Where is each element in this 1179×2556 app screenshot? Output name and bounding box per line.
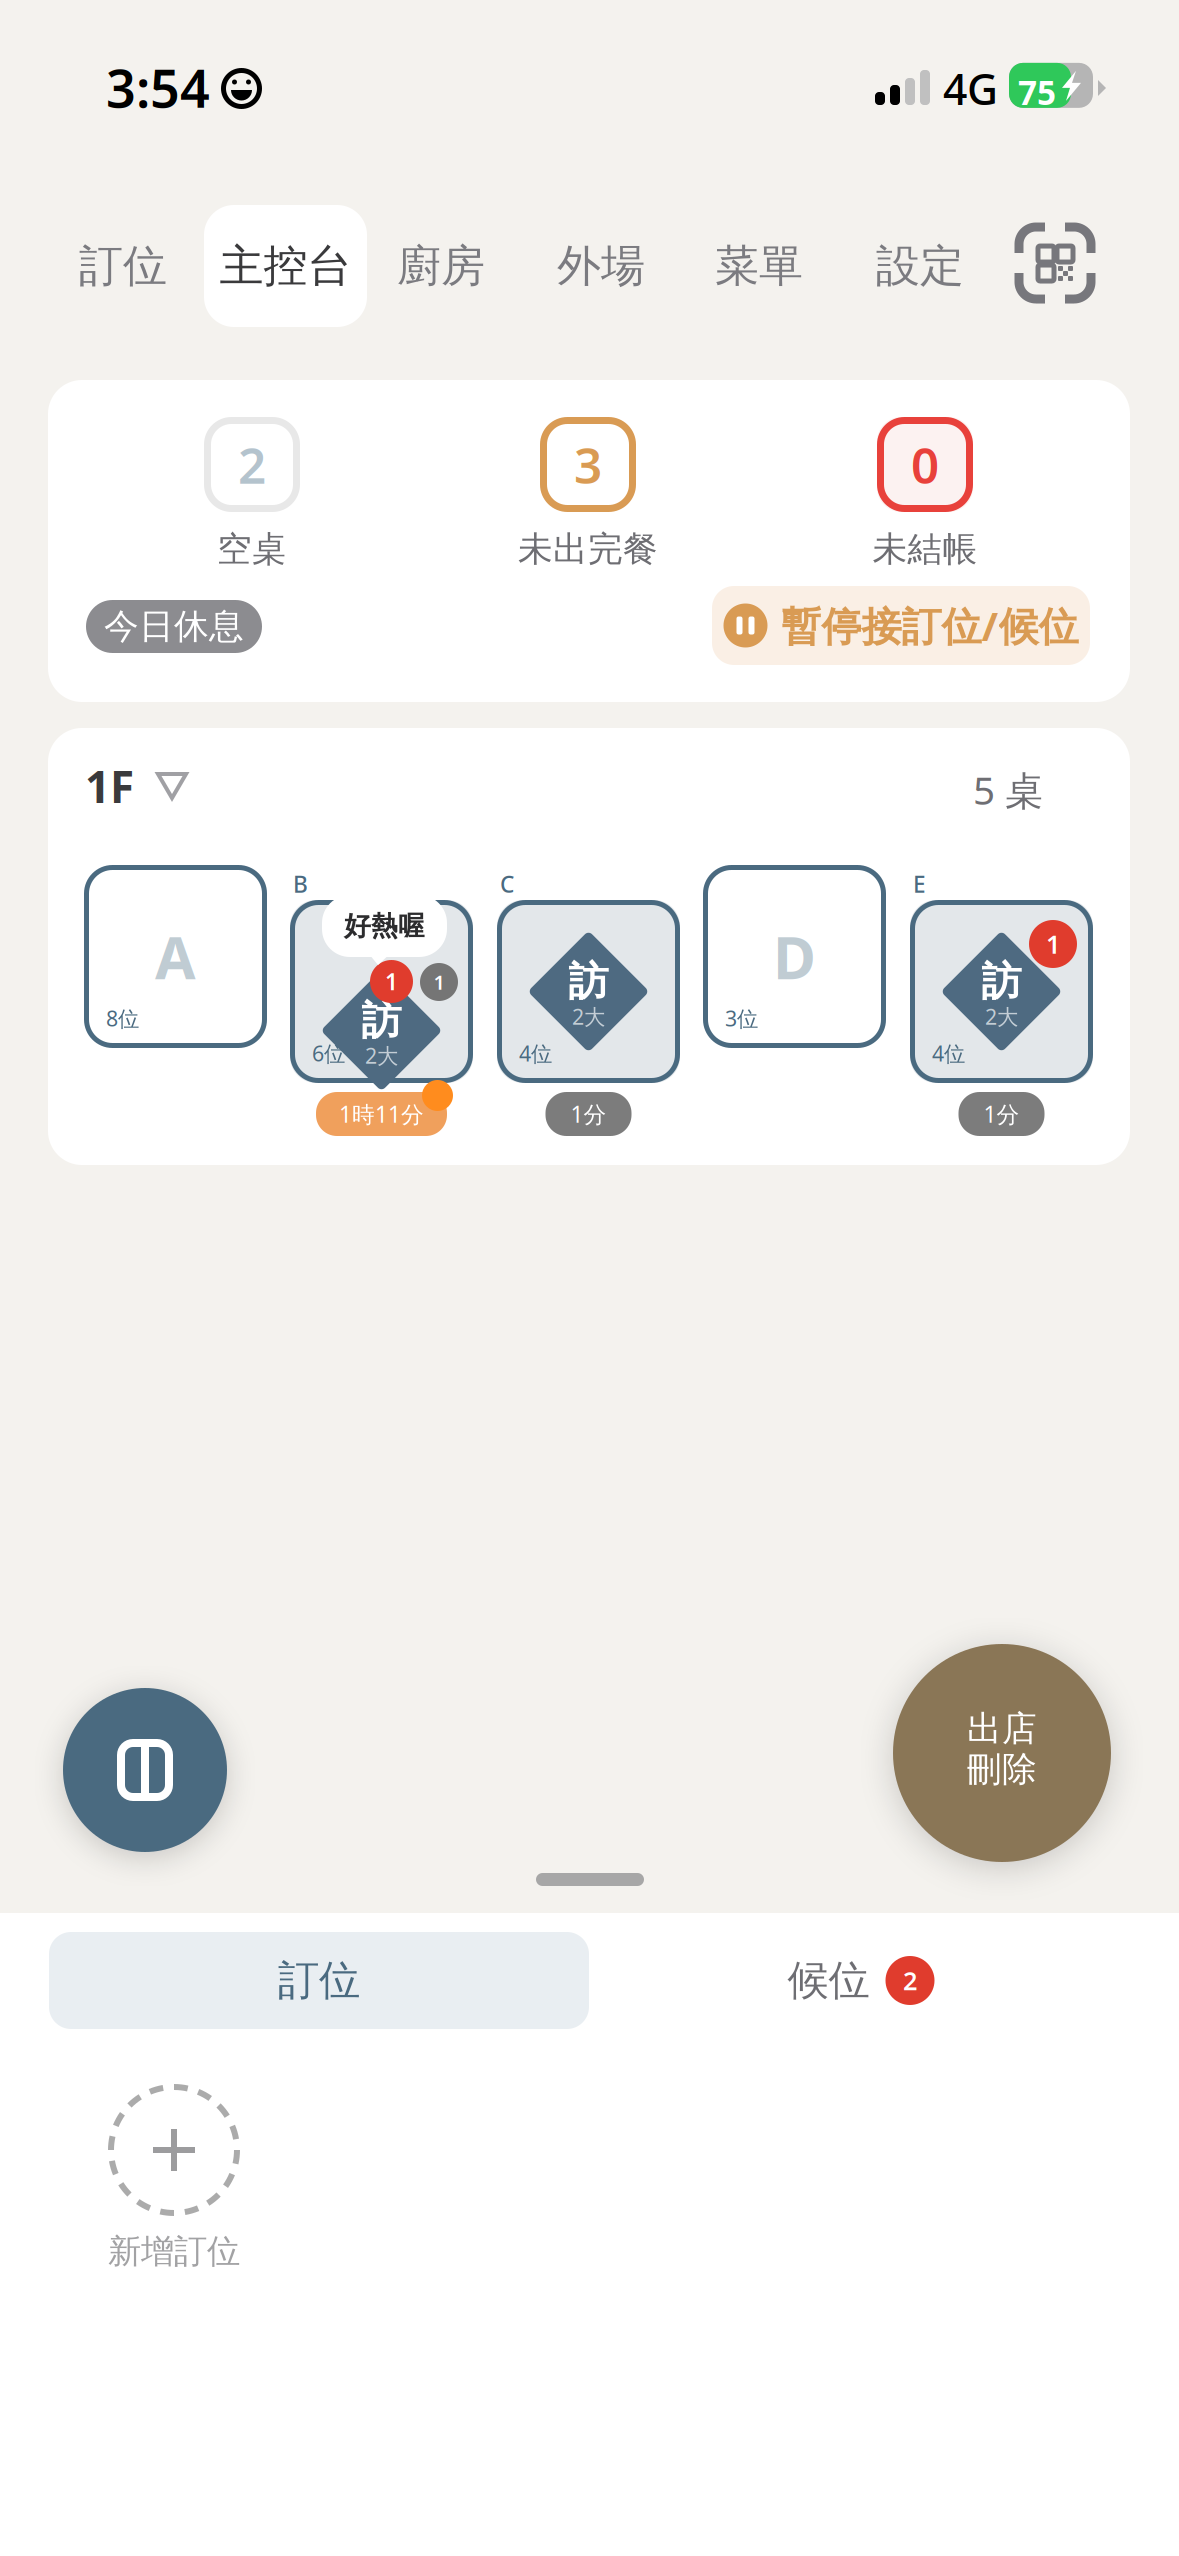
button[interactable]: 設定 (860, 205, 980, 327)
button[interactable]: 訂位 (49, 1932, 589, 2029)
staticText: 1 (433, 969, 444, 995)
staticText: B (293, 869, 308, 899)
button[interactable]: 新增訂位 (108, 2084, 240, 2272)
staticText: 訂位 (79, 239, 167, 293)
staticText: 出店 (967, 1707, 1037, 1750)
button[interactable]: 6位 (290, 900, 473, 1083)
staticText: 1 (1046, 927, 1060, 961)
staticText: 1分 (983, 1099, 1019, 1129)
staticText: 3 (574, 432, 602, 497)
staticText: 2 (903, 1964, 917, 1997)
button[interactable]: 外場 (541, 205, 661, 327)
staticText: 好熱喔 (344, 910, 425, 942)
button[interactable]: 出店 (893, 1644, 1111, 1862)
staticText: 2 (238, 432, 266, 497)
button[interactable]: 候位 (789, 1932, 933, 2029)
staticText: 8位 (106, 1004, 139, 1032)
staticText: 菜單 (715, 239, 803, 293)
staticText: 候位 (787, 1955, 869, 2006)
staticText: 3:54 (106, 53, 210, 122)
button[interactable]: 廚房 (381, 205, 501, 327)
button[interactable]: 切換版面 (63, 1688, 227, 1852)
button[interactable]: 掃描 QR Code (1019, 227, 1091, 299)
button[interactable]: D (703, 865, 886, 1048)
staticText: C (500, 869, 514, 899)
staticText: 5 桌 (973, 764, 1044, 815)
staticText: 訪 (981, 957, 1021, 1006)
staticText: 1 (385, 966, 398, 996)
button[interactable]: 暫停接訂位/候位 (712, 586, 1090, 665)
staticText: 1時11分 (339, 1099, 424, 1129)
staticText: 外場 (557, 239, 645, 293)
button[interactable]: 菜單 (699, 205, 819, 327)
button[interactable]: 訂位 (63, 205, 183, 327)
button[interactable]: 主控台 (204, 205, 367, 327)
staticText: 空桌 (217, 528, 287, 571)
staticText: A (155, 917, 196, 995)
staticText: 2大 (365, 1041, 398, 1070)
staticText: D (773, 917, 816, 995)
staticText: 2大 (572, 1002, 605, 1031)
staticText: 1F (85, 757, 134, 815)
button[interactable]: A (84, 865, 267, 1048)
staticText: 新增訂位 (108, 2231, 240, 2272)
staticText: 未結帳 (872, 528, 977, 571)
staticText: 廚房 (397, 239, 485, 293)
staticText: 4G (943, 60, 998, 117)
staticText: 今日休息 (104, 605, 244, 648)
staticText: 3位 (725, 1004, 758, 1032)
staticText: 訪 (568, 957, 608, 1006)
staticText: 4位 (519, 1039, 552, 1067)
staticText: 暫停接訂位/候位 (781, 599, 1078, 652)
staticText: 2大 (985, 1002, 1018, 1031)
staticText: 主控台 (219, 239, 351, 293)
button[interactable]: 4位 (497, 900, 680, 1083)
staticText: 設定 (876, 239, 964, 293)
staticText: 刪除 (967, 1748, 1037, 1791)
staticText: E (913, 869, 926, 899)
button[interactable]: 1F (85, 762, 188, 810)
staticText: 訪 (361, 996, 401, 1045)
staticText: 0 (911, 432, 939, 497)
staticText: 4位 (932, 1039, 965, 1067)
button[interactable]: 今日休息 (86, 600, 262, 653)
staticText: 未出完餐 (518, 528, 658, 571)
staticText: 訂位 (278, 1955, 360, 2006)
staticText: 6位 (312, 1039, 345, 1067)
staticText: 75 (1018, 70, 1056, 114)
button[interactable]: 4位 (910, 900, 1093, 1083)
staticText: 1分 (570, 1099, 606, 1129)
